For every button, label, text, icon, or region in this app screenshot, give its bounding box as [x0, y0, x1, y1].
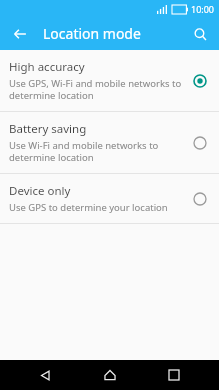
button[interactable]: Home	[90, 360, 130, 390]
button[interactable]: Battery saving	[0, 112, 219, 173]
staticText: Use Wi-Fi and mobile networks to determi…	[9, 139, 183, 164]
staticText: Battery saving	[9, 121, 87, 137]
staticText: Use GPS to determine your location	[9, 201, 168, 214]
button[interactable]: Recent apps	[154, 360, 194, 390]
button[interactable]: Back	[25, 360, 65, 390]
staticText: 10:00	[191, 3, 215, 15]
staticText: Device only	[9, 183, 71, 199]
staticText: Use GPS, Wi-Fi and mobile networks to de…	[9, 77, 183, 102]
staticText: Location mode	[43, 24, 141, 43]
button[interactable]: High accuracy	[0, 50, 219, 111]
button[interactable]: Back	[6, 20, 34, 48]
button[interactable]: Device only	[0, 174, 219, 223]
staticText: High accuracy	[9, 59, 85, 75]
button[interactable]: Search	[187, 21, 213, 47]
